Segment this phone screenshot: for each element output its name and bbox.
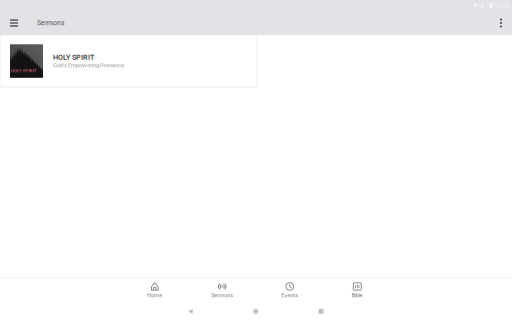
staticText: God's Empowering Presence	[53, 62, 124, 69]
button[interactable]: Back	[175, 303, 205, 320]
staticText: Events	[281, 292, 298, 299]
staticText: HOLY SPIRIT	[11, 68, 37, 73]
staticText: Home	[147, 292, 162, 299]
button[interactable]: Events	[256, 278, 323, 303]
staticText: Sermons	[211, 292, 233, 299]
button[interactable]: Recent apps	[306, 303, 336, 320]
staticText: 10:26	[496, 2, 509, 9]
staticText: Sermons	[37, 19, 65, 27]
button[interactable]: Sermons	[188, 278, 256, 303]
button[interactable]: Home	[241, 303, 271, 320]
staticText: Bible	[352, 292, 363, 299]
button[interactable]: More options	[490, 11, 512, 35]
button[interactable]: HOLY SPIRIT	[0, 35, 257, 87]
staticText: HOLY SPIRIT	[53, 53, 94, 62]
button[interactable]: Open navigation menu	[2, 11, 26, 35]
button[interactable]: Bible	[323, 278, 391, 303]
button[interactable]: Home	[121, 278, 188, 303]
